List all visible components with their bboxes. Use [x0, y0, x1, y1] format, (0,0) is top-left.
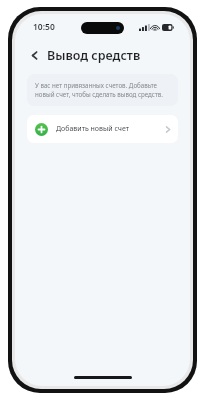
staticText: У вас нет привязанных счетов. Добавьте н… [35, 81, 170, 99]
staticText: Вывод средств [47, 47, 141, 64]
staticText: Добавить новый счет [56, 124, 130, 134]
button[interactable]: Добавить новый счет [27, 115, 178, 143]
staticText: 10:50 [33, 21, 55, 33]
button[interactable]: Back [26, 47, 42, 63]
